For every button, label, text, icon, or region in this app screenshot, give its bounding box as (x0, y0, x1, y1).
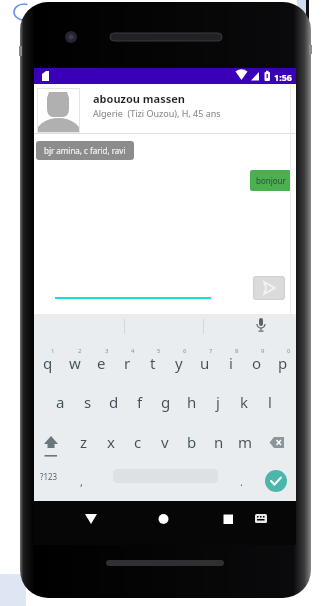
button[interactable]: v (151, 422, 178, 462)
button[interactable]: k (231, 382, 257, 422)
staticText: 1:56 (274, 71, 292, 83)
button[interactable]: s (74, 382, 101, 422)
staticText: y (175, 353, 183, 373)
button[interactable] (34, 418, 71, 458)
staticText: 0 (287, 347, 291, 355)
button[interactable]: a (47, 382, 74, 422)
staticText: 7 (209, 347, 213, 355)
staticText: bjr amina, c farid, ravi (44, 145, 126, 156)
button[interactable] (250, 316, 272, 338)
button[interactable]: 6 (166, 341, 192, 381)
staticText: 9 (261, 347, 265, 355)
staticText: w (69, 353, 81, 373)
button[interactable]: bjr amina, c farid, ravi (36, 141, 134, 160)
staticText: 2 (78, 347, 82, 355)
button[interactable]: bonjour (250, 170, 291, 191)
button[interactable]: 4 (114, 341, 140, 381)
staticText: n (214, 432, 224, 452)
button[interactable] (34, 501, 122, 545)
staticText: c (134, 432, 142, 452)
button[interactable]: 5 (140, 341, 166, 381)
staticText: l (268, 392, 272, 412)
button[interactable]: j (205, 382, 231, 422)
staticText: . (240, 474, 243, 489)
staticText: q (43, 353, 53, 373)
button[interactable] (265, 470, 287, 492)
button[interactable]: 2 (61, 341, 88, 381)
button[interactable]: b (178, 422, 205, 462)
staticText: o (252, 353, 262, 373)
staticText: Algerie (Tizi Ouzou), H, 45 ans (93, 107, 221, 119)
button[interactable] (253, 276, 285, 300)
button[interactable]: 3 (88, 341, 114, 381)
staticText: j (216, 392, 220, 412)
staticText: b (187, 432, 197, 452)
button[interactable] (122, 501, 209, 545)
staticText: , (80, 474, 83, 489)
staticText: u (200, 353, 210, 373)
button[interactable]: x (97, 422, 124, 462)
staticText: 4 (131, 347, 135, 355)
button[interactable]: c (124, 422, 151, 462)
button[interactable] (229, 458, 259, 501)
staticText: r (124, 353, 131, 373)
staticText: g (161, 392, 171, 412)
staticText: 6 (183, 347, 187, 355)
button[interactable]: f (127, 382, 153, 422)
staticText: h (187, 392, 197, 412)
button[interactable]: 8 (218, 341, 244, 381)
button[interactable]: abouzou massen (34, 84, 296, 134)
staticText: 8 (235, 347, 239, 355)
staticText: 1 (51, 347, 55, 355)
staticText: d (109, 392, 119, 412)
staticText: v (161, 432, 169, 452)
staticText: k (240, 392, 249, 412)
staticText: t (150, 353, 156, 373)
button[interactable]: d (101, 382, 127, 422)
staticText: ?123 (40, 471, 58, 482)
staticText: i (229, 353, 233, 373)
staticText: a (56, 392, 65, 412)
staticText: x (107, 432, 115, 452)
button[interactable] (34, 458, 71, 501)
staticText: 3 (105, 347, 109, 355)
button[interactable]: n (205, 422, 232, 462)
button[interactable]: 0 (270, 341, 296, 381)
button[interactable]: z (71, 422, 97, 462)
button[interactable]: h (179, 382, 205, 422)
staticText: p (278, 353, 288, 373)
staticText: z (80, 432, 88, 452)
button[interactable]: g (153, 382, 179, 422)
staticText: abouzou massen (93, 91, 185, 106)
staticText: m (238, 432, 253, 452)
staticText: f (137, 392, 143, 412)
button[interactable] (259, 418, 296, 458)
button[interactable]: 9 (244, 341, 270, 381)
button[interactable]: m (232, 422, 259, 462)
button[interactable] (209, 501, 296, 545)
staticText: 5 (157, 347, 161, 355)
button[interactable]: l (257, 382, 283, 422)
staticText: s (84, 392, 92, 412)
button[interactable]: 7 (192, 341, 218, 381)
button[interactable] (71, 458, 101, 501)
button[interactable]: 1 (34, 341, 61, 381)
staticText: e (97, 353, 106, 373)
staticText: bonjour (256, 175, 286, 186)
